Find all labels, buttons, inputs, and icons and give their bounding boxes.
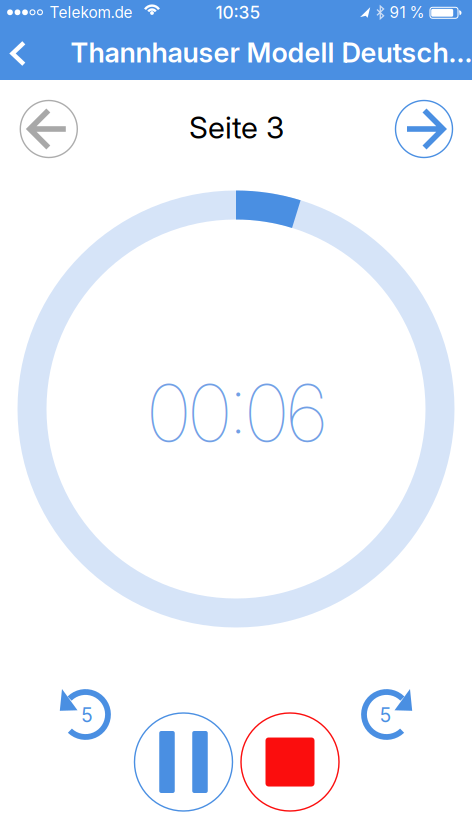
button[interactable]: Back 5 seconds <box>55 684 116 745</box>
button[interactable]: Stop <box>241 713 339 811</box>
button[interactable]: Back <box>0 31 41 75</box>
staticText: Thannhauser Modell Deutsch... <box>70 36 472 69</box>
staticText: 91 % <box>389 3 424 22</box>
staticText: 5 <box>81 704 92 727</box>
staticText: Seite 3 <box>189 109 284 146</box>
button[interactable]: Next page <box>395 100 452 157</box>
button[interactable]: Previous page <box>20 100 77 157</box>
staticText: Telekom.de <box>49 3 132 22</box>
staticText: 00:06 <box>145 365 328 461</box>
button[interactable]: Pause <box>134 713 232 811</box>
button[interactable]: Forward 5 seconds <box>356 684 417 745</box>
staticText: 5 <box>380 704 391 727</box>
staticText: 10:35 <box>215 2 260 23</box>
